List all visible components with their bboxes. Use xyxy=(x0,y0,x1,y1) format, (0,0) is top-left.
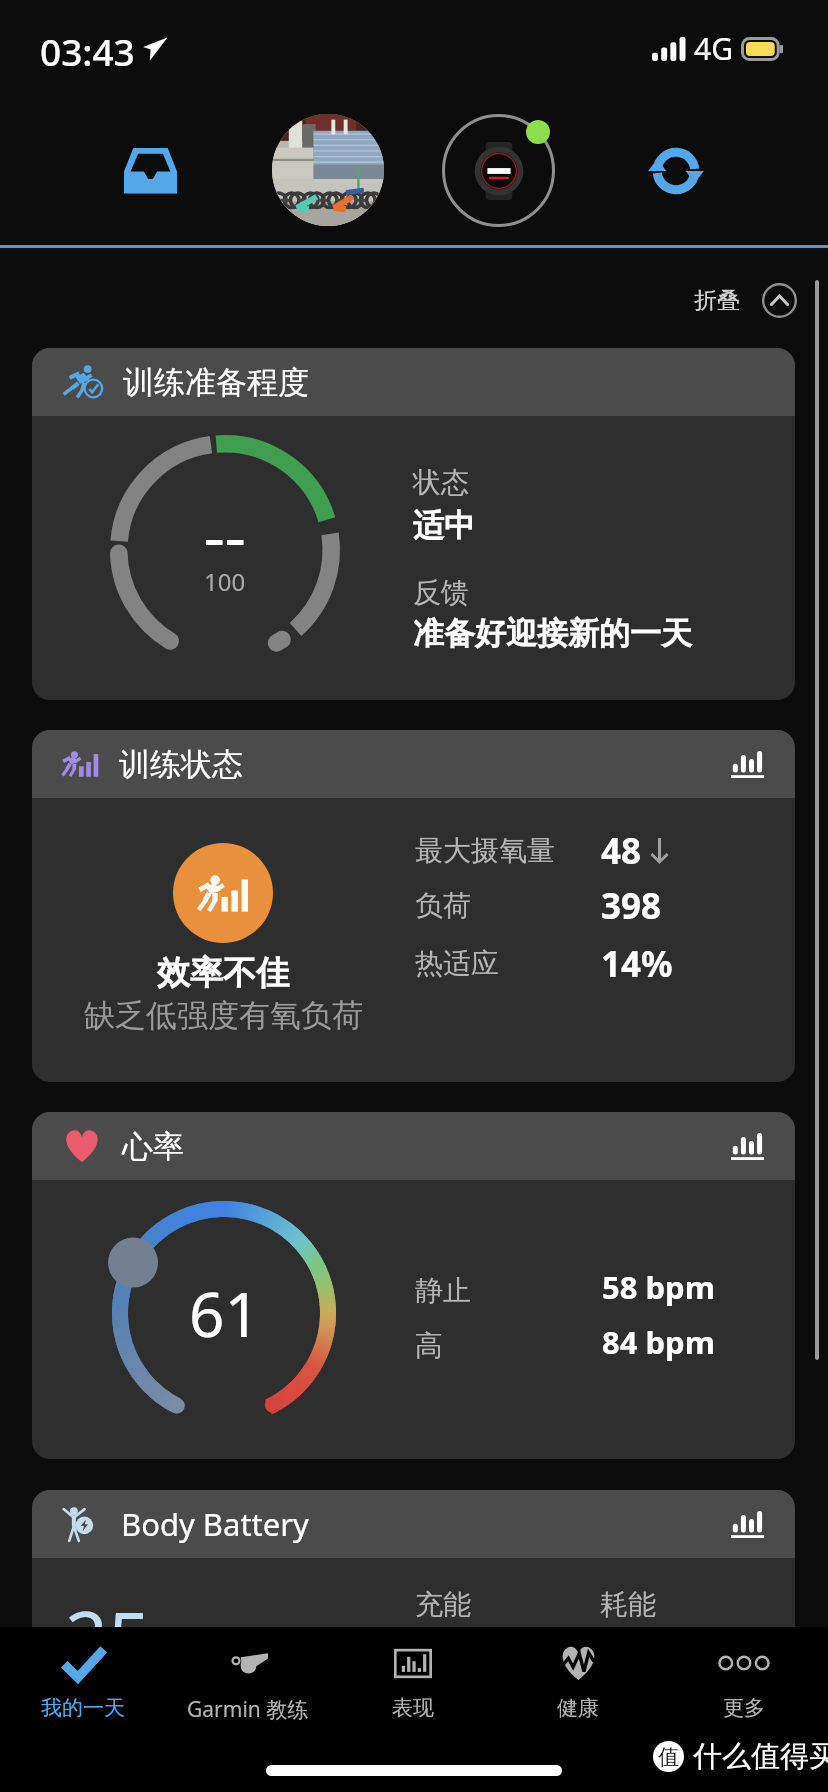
staticText: 充能 xyxy=(415,1587,471,1622)
button[interactable]: Device xyxy=(442,114,555,227)
button[interactable]: 训练准备程度 xyxy=(32,348,795,700)
staticText: 心率 xyxy=(122,1127,184,1166)
staticText: 训练准备程度 xyxy=(123,363,309,402)
staticText: 耗能 xyxy=(600,1587,656,1622)
button[interactable]: Garmin 教练 xyxy=(166,1632,330,1728)
staticText: 适中 xyxy=(413,506,475,545)
button[interactable]: 健康 xyxy=(496,1632,660,1728)
staticText: 58 bpm xyxy=(602,1266,715,1308)
staticText: 84 bpm xyxy=(602,1321,715,1363)
staticText: 高 xyxy=(415,1328,443,1363)
button[interactable]: 训练状态 xyxy=(32,730,795,1082)
staticText: 热适应 xyxy=(415,946,499,981)
button[interactable]: 折叠 xyxy=(694,283,797,318)
button[interactable]: Body Battery xyxy=(32,1490,795,1670)
staticText: 4G xyxy=(694,28,733,69)
staticText: 健康 xyxy=(557,1695,599,1721)
button[interactable]: 心率 xyxy=(32,1112,795,1459)
button[interactable]: Sync xyxy=(626,121,726,221)
staticText: 值 xyxy=(658,1744,679,1770)
staticText: 静止 xyxy=(415,1273,471,1308)
staticText: 训练状态 xyxy=(119,745,243,784)
staticText: 表现 xyxy=(392,1695,434,1721)
staticText: 25 xyxy=(65,1586,151,1670)
staticText: 效率不佳 xyxy=(157,952,289,994)
button[interactable]: 表现 xyxy=(331,1632,495,1728)
staticText: 03:43 xyxy=(40,26,135,76)
staticText: 反馈 xyxy=(413,575,469,610)
button[interactable]: 我的一天 xyxy=(1,1632,165,1728)
staticText: 14% xyxy=(601,940,673,988)
staticText: 我的一天 xyxy=(41,1695,125,1721)
staticText: 61 xyxy=(189,1271,260,1355)
staticText: 48 xyxy=(601,827,642,875)
staticText: 负荷 xyxy=(415,888,471,923)
staticText: 398 xyxy=(601,882,662,930)
button[interactable]: 更多 xyxy=(662,1632,826,1728)
staticText: Garmin 教练 xyxy=(187,1695,309,1724)
staticText: 状态 xyxy=(413,465,469,500)
staticText: 缺乏低强度有氧负荷 xyxy=(84,996,363,1035)
staticText: 100 xyxy=(204,565,246,598)
button[interactable]: Inbox xyxy=(100,120,200,220)
staticText: 更多 xyxy=(723,1695,765,1721)
button[interactable]: Profile xyxy=(272,114,384,226)
staticText: 折叠 xyxy=(694,286,740,315)
staticText: Body Battery xyxy=(121,1503,309,1545)
staticText: 准备好迎接新的一天 xyxy=(413,614,692,653)
staticText: 什么值得买 xyxy=(693,1738,828,1775)
staticText: 最大摄氧量 xyxy=(415,833,555,868)
